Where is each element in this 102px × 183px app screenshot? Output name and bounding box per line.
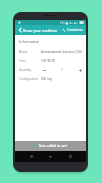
button[interactable]: Decrease <box>41 67 47 73</box>
staticText: Contact us <box>67 28 83 32</box>
button[interactable]: Increase <box>77 67 83 73</box>
staticText: Name <box>19 50 28 54</box>
staticText: 1 <box>61 68 63 72</box>
staticText: Information <box>19 39 40 44</box>
staticText: Configuration <box>19 77 39 81</box>
staticText: 500 mg <box>41 77 52 81</box>
staticText: CHF 85.00 <box>41 59 56 63</box>
staticText: Quantity <box>19 68 32 72</box>
button[interactable]: Contact us <box>60 25 85 35</box>
staticText: Know your medicine <box>23 28 58 33</box>
staticText: Price <box>19 59 26 63</box>
staticText: Acetazolamide Injection, 500... <box>41 50 83 54</box>
button[interactable]: Back <box>28 153 35 160</box>
button[interactable]: Back <box>17 27 23 33</box>
button[interactable]: Home <box>47 153 54 160</box>
staticText: Item added to cart <box>39 144 67 148</box>
button[interactable]: Recents <box>67 153 74 160</box>
